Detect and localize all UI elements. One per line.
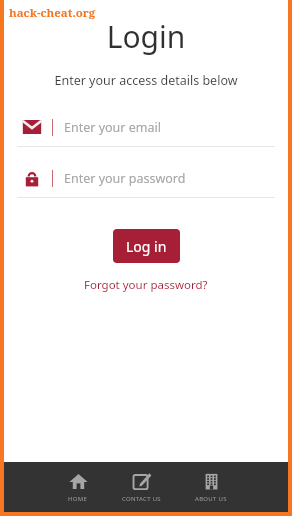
staticText: hack-cheat.org (9, 5, 96, 21)
button[interactable]: Enter your email (13, 112, 279, 147)
staticText: Forgot your password? (84, 277, 208, 293)
staticText: ABOUT US (195, 495, 227, 503)
button[interactable]: Log in (113, 229, 180, 263)
button[interactable]: Forgot your password? (78, 275, 214, 295)
staticText: Log in (126, 237, 167, 256)
button[interactable]: Home (62, 468, 94, 507)
button[interactable]: About us (189, 468, 233, 507)
staticText: HOME (68, 495, 88, 503)
button[interactable]: Enter your password (13, 163, 279, 198)
button[interactable]: Contact us (116, 468, 167, 507)
staticText: Enter your email (64, 119, 161, 136)
staticText: Enter your password (64, 170, 186, 187)
staticText: CONTACT US (122, 495, 161, 503)
staticText: Login (4, 16, 288, 57)
staticText: Enter your access details below (4, 72, 288, 89)
